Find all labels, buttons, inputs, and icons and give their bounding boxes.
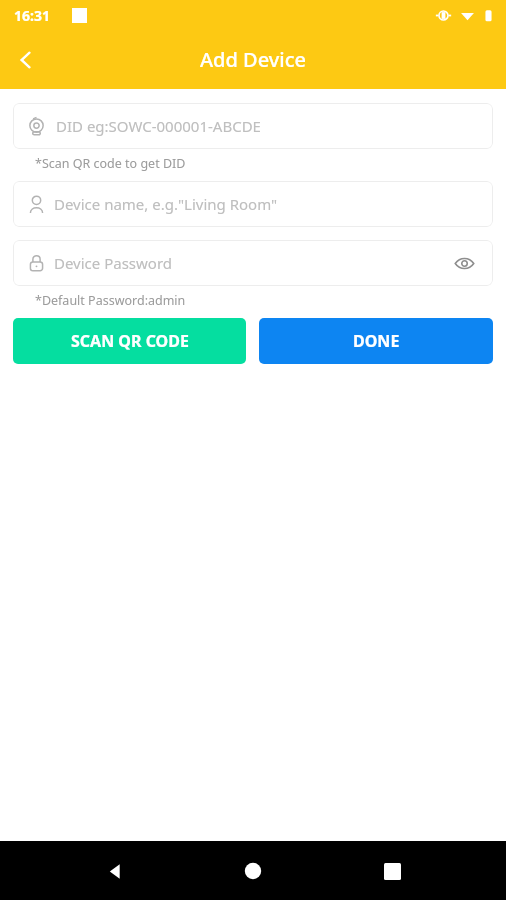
- button[interactable]: Back: [91, 847, 139, 895]
- staticText: SCAN QR CODE: [71, 330, 189, 352]
- button[interactable]: Device name, e.g."Living Room": [13, 181, 493, 227]
- button[interactable]: Device Password: [13, 240, 493, 286]
- staticText: Device Password: [54, 253, 173, 273]
- staticText: Device name, e.g."Living Room": [54, 194, 278, 214]
- staticText: 16:31: [14, 6, 50, 25]
- staticText: Add Device: [200, 46, 307, 73]
- button[interactable]: Recents: [368, 847, 416, 895]
- staticText: DONE: [353, 330, 400, 352]
- button[interactable]: DID eg:SOWC-000001-ABCDE: [13, 103, 493, 149]
- button[interactable]: Back: [0, 34, 52, 86]
- button[interactable]: DONE: [259, 318, 493, 364]
- staticText: *Default Password:admin: [35, 292, 186, 309]
- button[interactable]: Home: [229, 847, 277, 895]
- button[interactable]: SCAN QR CODE: [13, 318, 246, 364]
- staticText: *Scan QR code to get DID: [35, 155, 186, 172]
- button[interactable]: Show password: [449, 248, 479, 278]
- staticText: DID eg:SOWC-000001-ABCDE: [56, 116, 261, 136]
